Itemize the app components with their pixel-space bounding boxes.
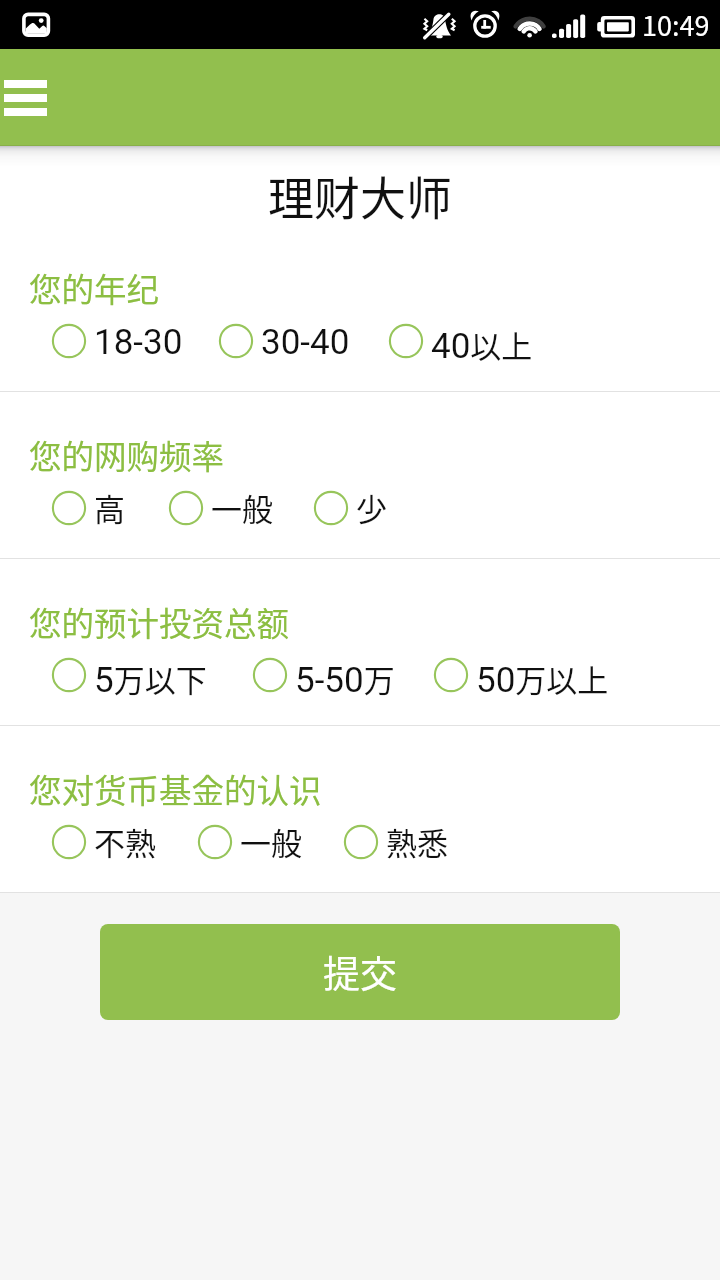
button[interactable]: 18-30: [52, 313, 186, 369]
staticText: 熟悉: [386, 819, 448, 864]
button[interactable]: 一般: [169, 480, 275, 536]
button[interactable]: 5-50万: [253, 647, 398, 703]
button[interactable]: 提交: [100, 924, 620, 1020]
staticText: 10:49: [642, 5, 710, 44]
staticText: 不熟: [94, 819, 156, 864]
staticText: 提交: [323, 945, 397, 999]
button[interactable]: 高: [52, 480, 127, 536]
staticText: 30-40: [261, 322, 350, 363]
staticText: 您对货币基金的认识: [29, 765, 322, 812]
staticText: 一般: [240, 819, 302, 864]
button[interactable]: 50万以上: [434, 647, 610, 703]
staticText: 40以上: [431, 322, 533, 367]
button[interactable]: 不熟: [52, 814, 158, 870]
button[interactable]: 5万以下: [52, 647, 208, 703]
staticText: 高: [94, 485, 125, 530]
staticText: 您的预计投资总额: [29, 598, 290, 645]
button[interactable]: 一般: [198, 814, 304, 870]
button[interactable]: 40以上: [389, 313, 534, 369]
staticText: 一般: [211, 485, 273, 530]
button[interactable]: 30-40: [219, 313, 353, 369]
staticText: 50万以上: [476, 656, 609, 701]
staticText: 5-50万: [295, 656, 395, 701]
button[interactable]: Menu: [0, 68, 60, 128]
staticText: 您的网购频率: [29, 431, 225, 478]
staticText: 18-30: [94, 322, 183, 363]
button[interactable]: 熟悉: [344, 814, 450, 870]
staticText: 您的年纪: [29, 264, 160, 311]
staticText: 理财大师: [268, 162, 452, 229]
staticText: 少: [356, 485, 387, 530]
staticText: 5万以下: [94, 656, 207, 701]
button[interactable]: 少: [314, 480, 389, 536]
